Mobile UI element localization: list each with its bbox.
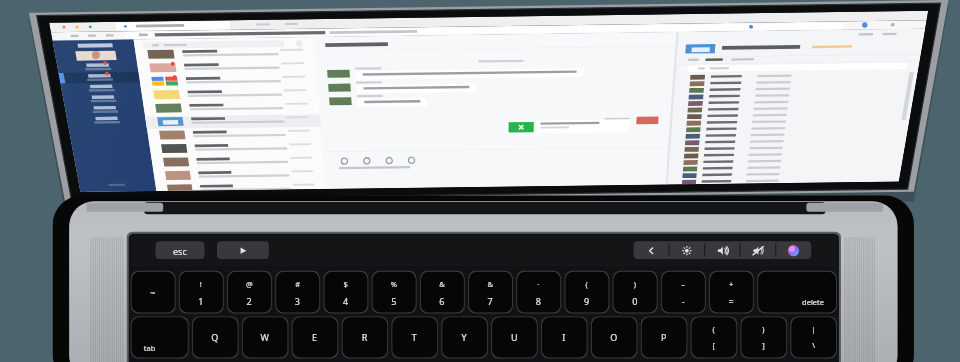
button[interactable]: MacBook Pro showing enterprise messaging… xyxy=(0,0,960,362)
